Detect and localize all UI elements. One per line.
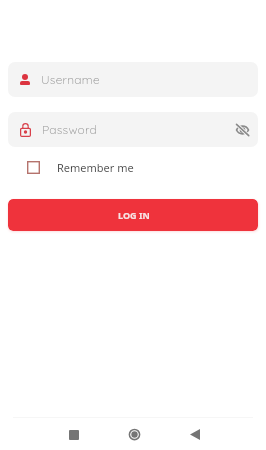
button[interactable]: Recent apps [43,418,103,450]
staticText: Password [42,122,97,137]
button[interactable]: Password [8,112,258,147]
button[interactable]: Username [8,62,258,97]
staticText: LOG IN [118,209,150,221]
button[interactable]: Back [163,418,223,450]
button[interactable]: LOG IN [8,199,258,231]
staticText: Remember me [57,160,134,175]
button[interactable]: Show password [226,112,258,147]
button[interactable]: Home [103,418,163,450]
staticText: Username [41,72,100,87]
button[interactable]: Remember me [27,156,134,178]
